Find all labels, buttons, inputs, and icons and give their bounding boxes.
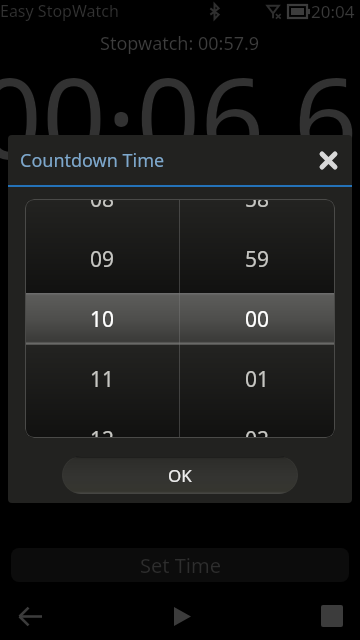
button[interactable]: Home [158, 592, 206, 640]
staticText: 02 [245, 425, 270, 438]
button[interactable]: OK [62, 456, 298, 494]
button[interactable]: 58 [180, 199, 335, 229]
button[interactable]: 02 [180, 409, 335, 438]
staticText: 09 [90, 245, 115, 274]
staticText: 01 [245, 365, 270, 394]
button[interactable]: Set Time [11, 548, 349, 582]
button[interactable]: 59 [180, 229, 335, 289]
button[interactable]: 01 [180, 349, 335, 409]
staticText: Set Time [140, 552, 221, 579]
button[interactable]: 10 [25, 289, 179, 349]
staticText: 00 [245, 305, 270, 334]
staticText: 00·06 6 [0, 39, 358, 192]
button[interactable]: 08 [25, 199, 179, 229]
staticText: 20:04 [311, 0, 355, 22]
staticText: 11 [90, 365, 115, 394]
button[interactable]: 11 [25, 349, 179, 409]
staticText: 59 [245, 245, 270, 274]
button[interactable]: Close [304, 136, 352, 184]
button[interactable]: Recents [308, 592, 356, 640]
staticText: Easy StopWatch [0, 0, 119, 22]
staticText: OK [168, 464, 192, 487]
button[interactable]: 09 [25, 229, 179, 289]
staticText: 08 [90, 199, 115, 214]
staticText: 10 [90, 305, 115, 334]
button[interactable]: 00 [180, 289, 335, 349]
staticText: Stopwatch: 00:57.9 [100, 31, 260, 56]
staticText: 58 [245, 199, 270, 214]
button[interactable]: Back [6, 592, 54, 640]
staticText: 12 [90, 425, 115, 438]
button[interactable]: 12 [25, 409, 179, 438]
staticText: Countdown Time [20, 148, 165, 173]
